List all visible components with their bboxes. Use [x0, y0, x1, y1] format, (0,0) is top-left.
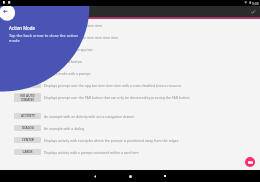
- button[interactable]: CENTER: [0, 134, 260, 146]
- staticText: Displays prompt over the app bar item it…: [44, 83, 182, 88]
- button[interactable]: ACTIVITY: [0, 110, 260, 122]
- button[interactable]: Back: [0, 6, 10, 16]
- staticText: CENTER: [22, 138, 34, 142]
- button[interactable]: TOP BAR: [0, 43, 260, 55]
- button[interactable]: DIALOG: [0, 67, 260, 79]
- staticText: DISMISS: [21, 83, 34, 87]
- staticText: CARDS: [22, 150, 33, 154]
- staticText: Tap the back arrow to close the action m…: [9, 33, 81, 43]
- staticText: An example with an Activity with out a n…: [44, 114, 135, 119]
- staticText: TOAST: [23, 23, 33, 27]
- button[interactable]: DISMISS: [0, 79, 260, 91]
- button[interactable]: FAB: [0, 55, 260, 67]
- staticText: NO AUTO DISMISS: [20, 94, 35, 102]
- button[interactable]: DIALOG: [0, 122, 260, 134]
- staticText: ACTIVITY: [21, 114, 35, 118]
- button[interactable]: Compose: [245, 157, 255, 167]
- button[interactable]: Back: [90, 171, 100, 181]
- button[interactable]: CARDS: [0, 146, 260, 158]
- staticText: SNACKBAR: [19, 35, 36, 39]
- staticText: Displays activity with examples where th…: [44, 138, 179, 143]
- staticText: Displays an icon in the app bar: [44, 47, 93, 52]
- staticText: Displays a snack item item item item ite…: [44, 35, 119, 40]
- button[interactable]: Done: [250, 7, 259, 16]
- staticText: Displays mode with a prompt: [44, 71, 91, 76]
- button[interactable]: Home: [125, 171, 135, 181]
- button[interactable]: TOAST: [0, 19, 260, 31]
- staticText: Displays activity with a prompt containe…: [44, 150, 139, 155]
- staticText: Action Mode: [9, 25, 35, 31]
- staticText: Displays prompt over the FAB button that…: [44, 95, 190, 100]
- staticText: An example with a dialog: [44, 126, 85, 131]
- button[interactable]: SNACKBAR: [0, 31, 260, 43]
- button[interactable]: NO AUTO DISMISS: [0, 91, 260, 104]
- staticText: 9:00: [252, 1, 259, 6]
- staticText: Displays the FAB button: [44, 59, 82, 64]
- staticText: Displays a snack item item item item: [44, 23, 103, 28]
- staticText: DIALOG: [22, 126, 34, 130]
- button[interactable]: Recents: [160, 171, 170, 181]
